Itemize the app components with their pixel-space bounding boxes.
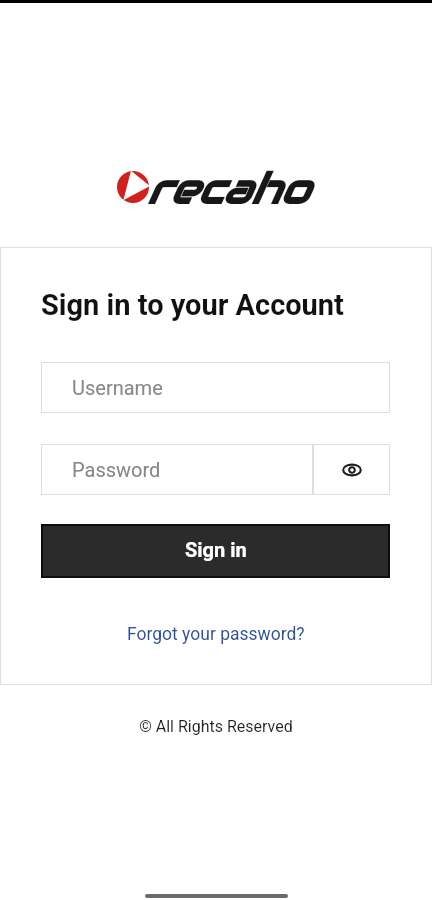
staticText: Sign in	[185, 538, 247, 561]
staticText: Sign in to your Account	[41, 288, 344, 322]
staticText: Forgot your password?	[127, 624, 305, 645]
staticText: © All Rights Reserved	[139, 717, 293, 736]
button[interactable]: Show password	[313, 444, 390, 495]
staticText: recaho	[146, 162, 331, 216]
button[interactable]: Forgot your password?	[121, 620, 311, 649]
staticText: Username	[72, 376, 163, 399]
button[interactable]: Username	[41, 362, 390, 413]
button[interactable]: Password	[41, 444, 313, 495]
button[interactable]: Sign in	[43, 526, 388, 576]
staticText: Password	[72, 458, 161, 481]
